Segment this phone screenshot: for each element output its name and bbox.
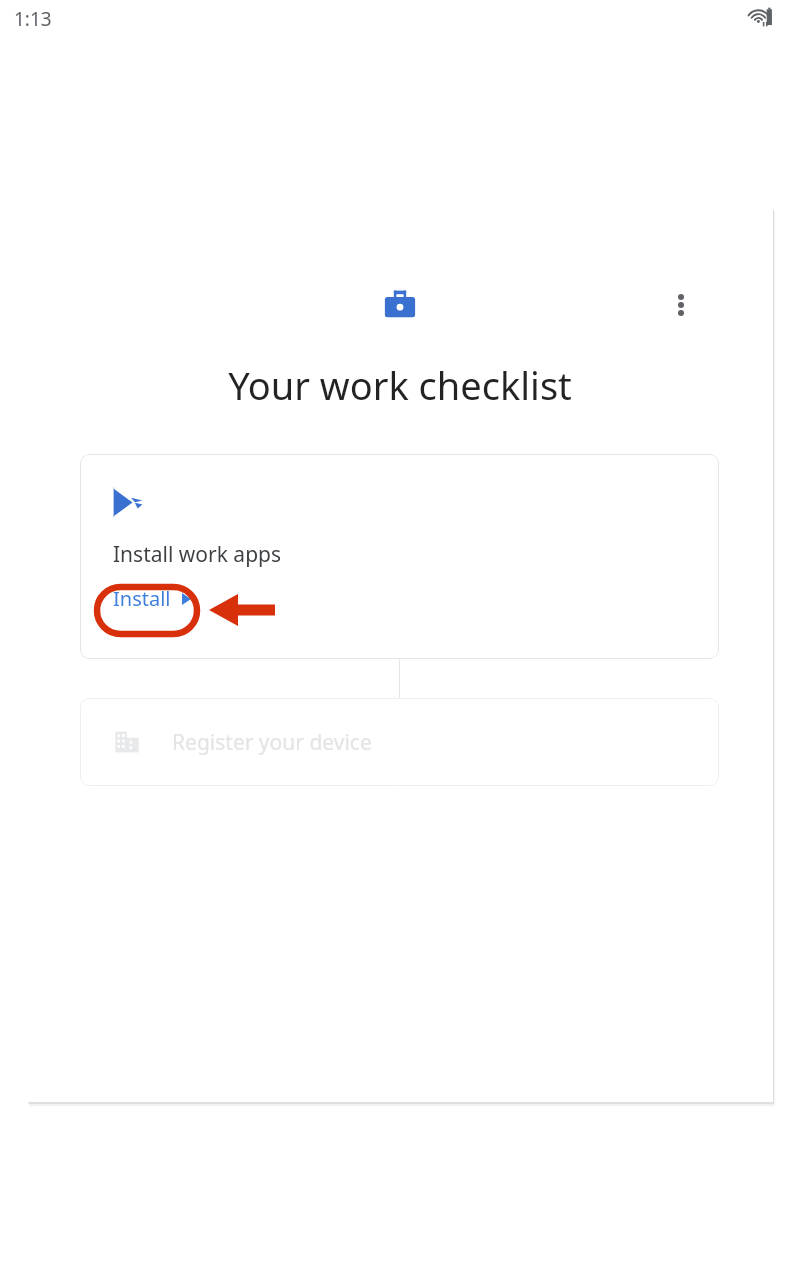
button[interactable]: Register your device — [80, 698, 719, 786]
staticText: Your work checklist — [27, 359, 773, 411]
staticText: Install work apps — [113, 540, 282, 569]
button[interactable]: Install — [110, 583, 194, 614]
button[interactable]: Install work apps — [80, 454, 719, 659]
staticText: 1:13 — [14, 6, 52, 32]
staticText: Install — [113, 585, 171, 612]
staticText: Register your device — [172, 728, 372, 757]
button[interactable]: More options — [664, 288, 698, 322]
